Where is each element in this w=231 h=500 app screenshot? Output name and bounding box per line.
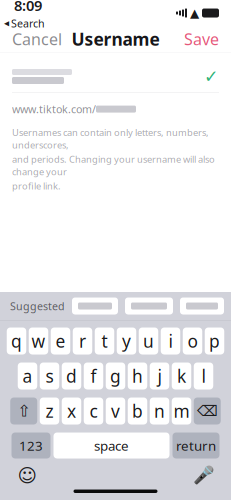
staticText: w <box>31 329 45 352</box>
staticText: t <box>101 329 107 352</box>
staticText: a <box>22 364 32 387</box>
staticText: space <box>94 437 129 454</box>
button[interactable]: ⌫ <box>194 397 221 424</box>
button[interactable]: u <box>139 327 158 354</box>
staticText: ⇧ <box>17 402 30 420</box>
button[interactable]: r <box>73 327 92 354</box>
button[interactable]: x <box>62 397 81 424</box>
staticText: o <box>187 329 197 352</box>
button[interactable]: c <box>84 397 103 424</box>
button[interactable]: n <box>150 397 169 424</box>
staticText: 🎤 <box>193 466 215 485</box>
button[interactable]: b <box>128 397 147 424</box>
staticText: p <box>209 329 220 352</box>
staticText: 123 <box>19 437 43 454</box>
button[interactable]: y <box>117 327 136 354</box>
button[interactable]: w <box>29 327 48 354</box>
staticText: Save <box>184 28 219 50</box>
button[interactable]: t <box>95 327 114 354</box>
button[interactable] <box>125 297 173 314</box>
staticText: l <box>201 364 205 387</box>
staticText: ⌫ <box>197 403 218 419</box>
staticText: ▲ <box>190 6 199 20</box>
button[interactable]: k <box>172 362 191 389</box>
staticText: q <box>11 329 22 352</box>
staticText: Suggested <box>10 299 65 313</box>
staticText: k <box>177 364 186 387</box>
staticText: m <box>173 399 189 422</box>
staticText: e <box>55 329 65 352</box>
button[interactable]: e <box>51 327 70 354</box>
staticText: Username <box>71 27 159 50</box>
button[interactable]: a <box>18 362 37 389</box>
button[interactable] <box>72 297 118 314</box>
staticText: profile link. <box>12 180 61 192</box>
button[interactable]: d <box>62 362 81 389</box>
staticText: s <box>45 364 53 387</box>
button[interactable]: j <box>150 362 169 389</box>
staticText: i <box>168 329 172 352</box>
button[interactable]: i <box>161 327 180 354</box>
staticText: u <box>143 329 154 352</box>
staticText: and periods. Changing your username will… <box>12 153 215 178</box>
button[interactable]: f <box>84 362 103 389</box>
button[interactable]: return <box>172 432 219 458</box>
button[interactable]: Emoji <box>14 464 40 486</box>
button[interactable]: m <box>172 397 191 424</box>
staticText: h <box>132 364 143 387</box>
button[interactable]: g <box>106 362 125 389</box>
button[interactable]: z <box>40 397 59 424</box>
staticText: r <box>79 329 86 352</box>
staticText: Search <box>11 16 45 30</box>
staticText: ◀ <box>4 19 9 27</box>
staticText: d <box>66 364 77 387</box>
staticText: ✓ <box>204 67 219 86</box>
button[interactable]: Cancel <box>0 20 74 58</box>
staticText: www.tiktok.com/ <box>12 102 96 116</box>
staticText: f <box>90 364 96 387</box>
button[interactable]: Save <box>172 20 231 58</box>
button[interactable]: Dictation <box>191 464 217 486</box>
staticText: g <box>110 364 121 387</box>
staticText: 8:09 <box>14 0 42 15</box>
button[interactable]: ⇧ <box>10 397 37 424</box>
staticText: v <box>111 399 120 422</box>
button[interactable]: q <box>7 327 26 354</box>
button[interactable]: space <box>53 432 169 458</box>
staticText: z <box>45 399 53 422</box>
button[interactable] <box>180 297 224 314</box>
button[interactable]: o <box>183 327 202 354</box>
staticText: c <box>89 399 97 422</box>
button[interactable]: s <box>40 362 59 389</box>
staticText: Cancel <box>12 28 62 50</box>
button[interactable]: 123 <box>11 432 50 458</box>
staticText: j <box>157 364 161 387</box>
button[interactable]: l <box>194 362 213 389</box>
button[interactable]: h <box>128 362 147 389</box>
staticText: n <box>154 399 165 422</box>
staticText: x <box>67 399 76 422</box>
staticText: return <box>176 437 216 454</box>
button[interactable]: p <box>205 327 224 354</box>
staticText: Usernames can contain only letters, numb… <box>12 126 209 151</box>
button[interactable]: v <box>106 397 125 424</box>
staticText: ☺ <box>17 465 36 486</box>
staticText: b <box>132 399 143 422</box>
staticText: y <box>122 329 131 352</box>
